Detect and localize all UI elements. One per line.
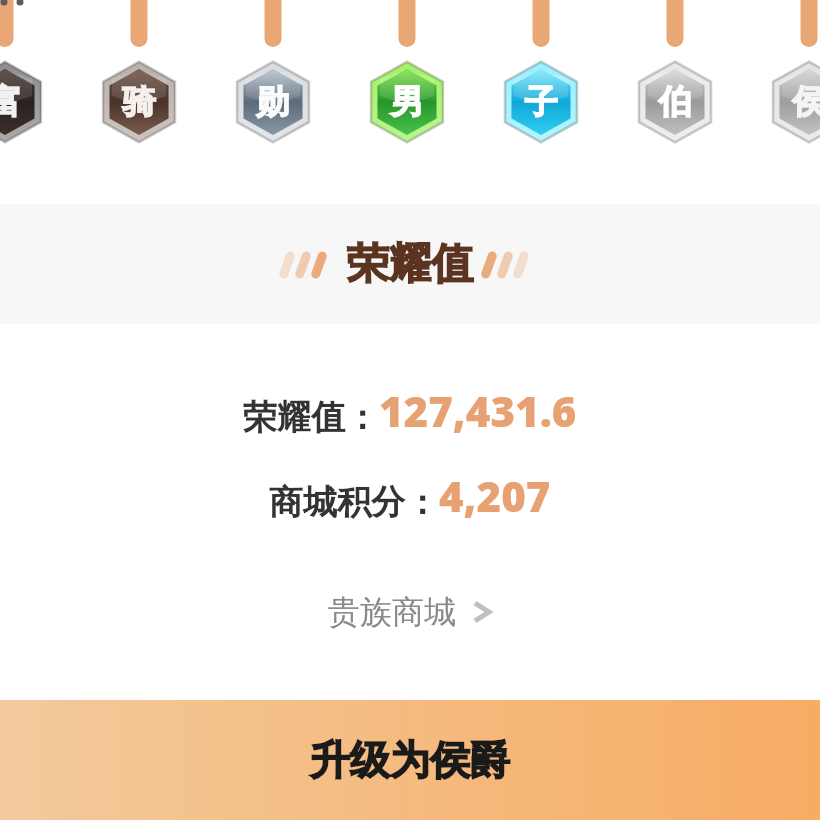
- staticText: 荣耀值：: [243, 396, 379, 439]
- staticText: 升级为侯爵: [310, 735, 510, 785]
- staticText: 伯: [658, 81, 692, 123]
- button[interactable]: 等级 伯: [639, 66, 711, 138]
- staticText: 贵族商城: [328, 592, 456, 632]
- staticText: 侯: [792, 81, 820, 123]
- button[interactable]: 等级 男: [371, 66, 443, 138]
- button[interactable]: 等级 骑: [103, 66, 175, 138]
- button[interactable]: 贵族商城: [318, 586, 502, 638]
- staticText: 骑: [122, 81, 156, 123]
- staticText: 127,431.6: [379, 382, 577, 439]
- staticText: 商城积分：: [269, 481, 439, 524]
- button[interactable]: 等级 子: [505, 66, 577, 138]
- staticText: 男: [390, 81, 424, 123]
- staticText: 子: [524, 81, 558, 123]
- button[interactable]: 等级 侯: [773, 66, 820, 138]
- staticText: 富: [0, 81, 22, 123]
- staticText: 4,207: [439, 467, 551, 524]
- button[interactable]: 等级 富: [0, 66, 41, 138]
- staticText: 勋: [256, 81, 290, 123]
- staticText: 荣耀值: [347, 238, 473, 291]
- button[interactable]: 等级 勋: [237, 66, 309, 138]
- button[interactable]: 升级为侯爵: [0, 700, 820, 820]
